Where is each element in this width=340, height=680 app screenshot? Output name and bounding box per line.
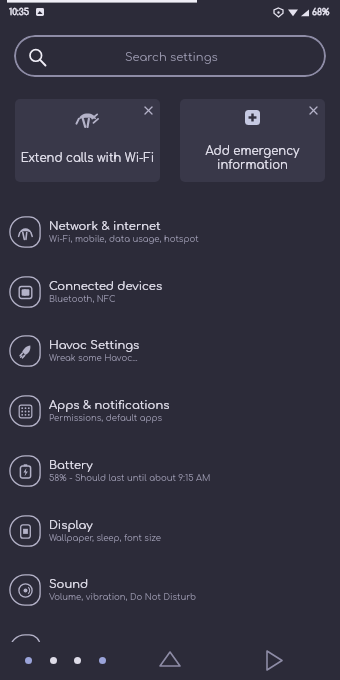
button[interactable]: Storage xyxy=(0,620,340,680)
staticText: Connected devices xyxy=(49,280,163,293)
staticText: Apps & notifications xyxy=(49,399,170,412)
staticText: Wallpaper, sleep, font size xyxy=(49,534,162,543)
staticText: Permissions, default apps xyxy=(49,414,163,423)
staticText: Extend calls with Wi-Fi xyxy=(16,152,159,165)
button[interactable]: Network & internet xyxy=(0,202,340,262)
button[interactable]: Battery xyxy=(0,441,340,501)
button[interactable]: Havoc Settings xyxy=(0,321,340,381)
staticText: Add emergency information xyxy=(181,145,324,172)
staticText: Wi-Fi, mobile, data usage, hotspot xyxy=(49,235,199,244)
button[interactable]: Home xyxy=(152,641,188,677)
staticText: Wreak some Havoc... xyxy=(49,354,138,363)
staticText: Search settings xyxy=(125,51,218,64)
staticText: Bluetooth, NFC xyxy=(49,295,116,304)
staticText: Volume, vibration, Do Not Disturb xyxy=(49,593,197,602)
button[interactable]: Apps & notifications xyxy=(0,381,340,441)
button[interactable]: Connected devices xyxy=(0,262,340,322)
button[interactable]: Sound xyxy=(0,560,340,620)
button[interactable]: Dismiss suggestion xyxy=(140,102,156,118)
button[interactable]: Dismiss suggestion xyxy=(305,102,321,118)
staticText: Havoc Settings xyxy=(49,339,140,352)
staticText: 10:35 xyxy=(9,8,30,17)
button[interactable]: Search settings xyxy=(14,35,326,77)
button[interactable]: Dismiss suggestion xyxy=(180,99,325,182)
staticText: Display xyxy=(49,519,93,532)
button[interactable]: Display xyxy=(0,501,340,561)
staticText: 58% - Should last until about 9:15 AM xyxy=(49,474,211,483)
staticText: 68% xyxy=(312,8,330,17)
staticText: Sound xyxy=(49,578,89,591)
button[interactable]: Dismiss suggestion xyxy=(15,99,160,182)
staticText: Network & internet xyxy=(49,220,161,233)
button[interactable]: Back xyxy=(256,642,292,678)
staticText: Battery xyxy=(49,459,93,472)
